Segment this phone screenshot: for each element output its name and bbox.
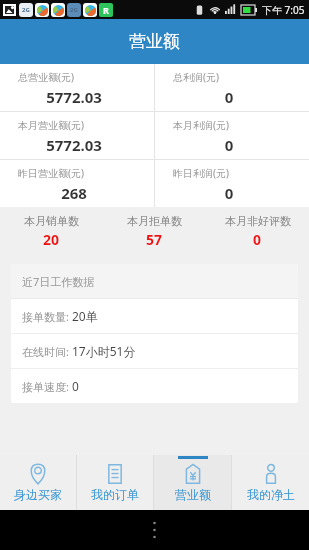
staticText: 5772.03 (18, 87, 130, 107)
button[interactable]: 接单数量: (11, 299, 298, 333)
staticText: 近7日工作数据 (22, 274, 95, 289)
button[interactable]: 我的净土 (232, 455, 309, 510)
button[interactable]: 营业额 (154, 455, 231, 510)
staticText: 本月拒单数 (127, 214, 182, 228)
button[interactable]: 我的订单 (77, 455, 153, 510)
staticText: 本月利润(元) (173, 118, 229, 132)
staticText: 2G (70, 6, 78, 14)
staticText: 总利润(元) (173, 70, 219, 84)
staticText: 0 (72, 378, 79, 394)
staticText: 本月营业额(元) (18, 118, 84, 132)
staticText: 在线时间: (22, 344, 72, 359)
staticText: 57 (146, 230, 163, 249)
staticText: 我的净土 (247, 487, 295, 502)
staticText: 总营业额(元) (18, 70, 74, 84)
staticText: 20单 (72, 308, 98, 324)
staticText: 昨日营业额(元) (18, 166, 84, 180)
staticText: 营业额 (175, 487, 211, 502)
staticText: 我的订单 (91, 487, 139, 502)
staticText: 下午 7:05 (262, 3, 305, 17)
staticText: 营业额 (129, 31, 180, 52)
staticText: 2G (22, 6, 30, 14)
staticText: 本月销单数 (24, 214, 79, 228)
staticText: R (103, 4, 109, 16)
staticText: 0 (173, 135, 285, 155)
staticText: 17小时51分 (72, 343, 136, 359)
staticText: 接单速度: (22, 379, 72, 394)
staticText: 20 (43, 230, 60, 249)
staticText: 昨日利润(元) (173, 166, 229, 180)
staticText: 接单数量: (22, 309, 72, 324)
staticText: 0 (173, 87, 285, 107)
staticText: 本月非好评数 (225, 214, 291, 228)
staticText: 5772.03 (18, 135, 130, 155)
button[interactable]: 在线时间: (11, 334, 298, 368)
button[interactable]: 身边买家 (0, 455, 76, 510)
staticText: 0 (173, 183, 285, 203)
staticText: 0 (253, 230, 262, 249)
staticText: 身边买家 (14, 487, 62, 502)
button[interactable]: 接单速度: (11, 369, 298, 403)
staticText: 268 (18, 183, 130, 203)
